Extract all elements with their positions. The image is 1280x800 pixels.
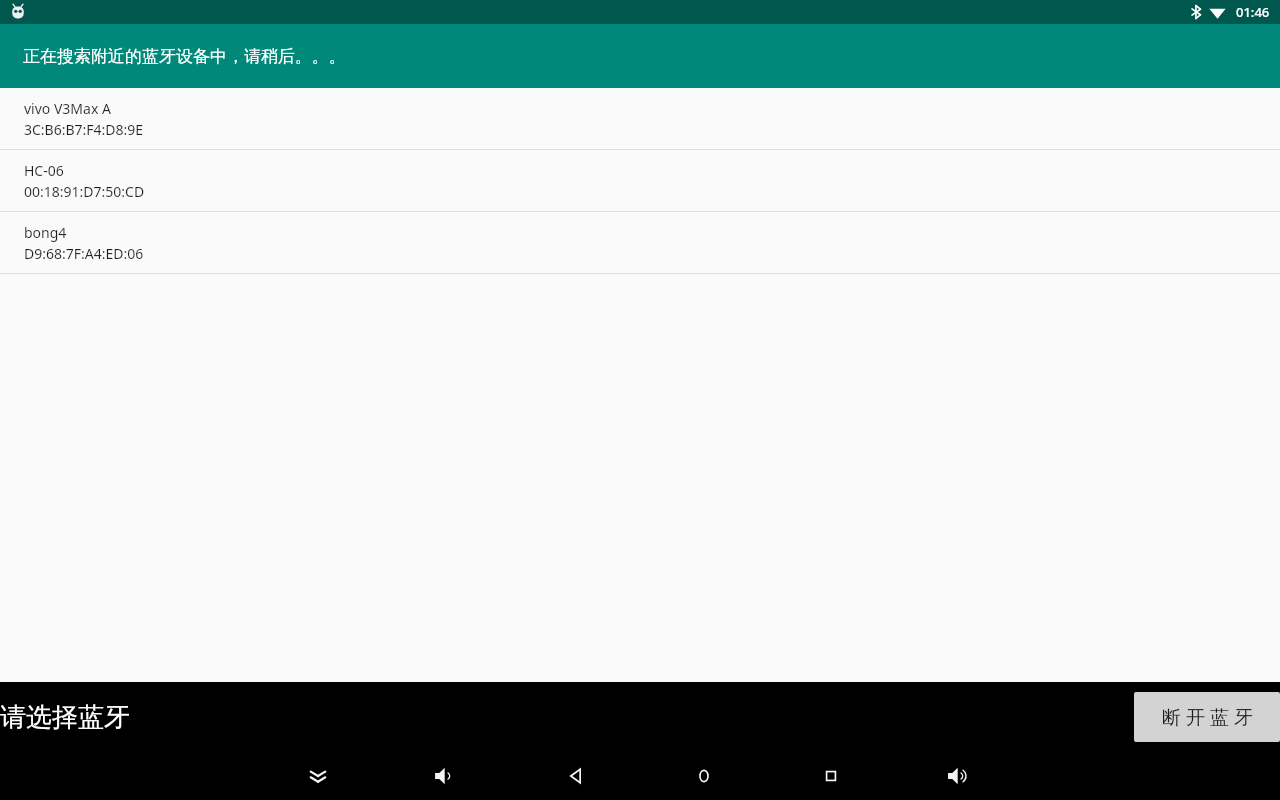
staticText: vivo V3Max A xyxy=(24,99,111,118)
button[interactable]: bong4 xyxy=(0,212,1280,273)
staticText: 00:18:91:D7:50:CD xyxy=(24,182,145,201)
staticText: 3C:B6:B7:F4:D8:9E xyxy=(24,120,144,139)
button[interactable]: Hide navigation bar xyxy=(294,752,342,800)
button[interactable]: Volume up xyxy=(935,752,983,800)
button[interactable]: Back xyxy=(552,752,600,800)
staticText: 断 开 蓝 牙 xyxy=(1162,704,1253,730)
other: Application icon xyxy=(10,4,26,20)
button[interactable]: 断 开 蓝 牙 xyxy=(1134,692,1280,742)
staticText: D9:68:7F:A4:ED:06 xyxy=(24,244,144,263)
button[interactable]: vivo V3Max A xyxy=(0,88,1280,149)
staticText: 正在搜索附近的蓝牙设备中，请稍后。。。 xyxy=(23,46,346,67)
button[interactable]: HC-06 xyxy=(0,150,1280,211)
button[interactable]: Recent apps xyxy=(807,752,855,800)
button[interactable]: Volume down xyxy=(422,752,470,800)
staticText: 请选择蓝牙 xyxy=(0,701,130,734)
other: Wi-Fi signal xyxy=(1209,6,1226,19)
other: Bluetooth on xyxy=(1191,5,1201,19)
staticText: 01:46 xyxy=(1236,3,1270,21)
staticText: HC-06 xyxy=(24,161,64,180)
staticText: bong4 xyxy=(24,223,67,242)
button[interactable]: Home xyxy=(680,752,728,800)
